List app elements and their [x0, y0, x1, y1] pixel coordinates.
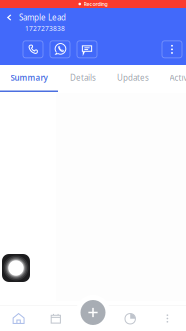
staticText: Recording: [83, 0, 107, 8]
button[interactable]: WhatsApp: [50, 41, 70, 58]
button[interactable]: Message: [77, 41, 97, 58]
button[interactable]: More options: [162, 41, 182, 58]
button[interactable]: Updates: [108, 65, 158, 92]
staticText: Details: [70, 72, 96, 83]
staticText: Activity: [169, 72, 186, 83]
button[interactable]: Home: [0, 306, 37, 331]
staticText: Updates: [117, 72, 149, 83]
button[interactable]: Activity: [158, 65, 186, 92]
button[interactable]: Back: [4, 12, 15, 23]
button[interactable]: Add: [78, 298, 107, 327]
staticText: Sample Lead: [19, 12, 66, 23]
staticText: 1727273838: [25, 24, 65, 33]
button[interactable]: More: [149, 306, 186, 331]
button[interactable]: Reports: [112, 306, 149, 331]
staticText: Summary: [10, 72, 47, 83]
button[interactable]: Summary: [0, 65, 58, 92]
button[interactable]: Call: [23, 41, 43, 58]
button[interactable]: Calendar: [37, 306, 74, 331]
button[interactable]: Details: [58, 65, 108, 92]
